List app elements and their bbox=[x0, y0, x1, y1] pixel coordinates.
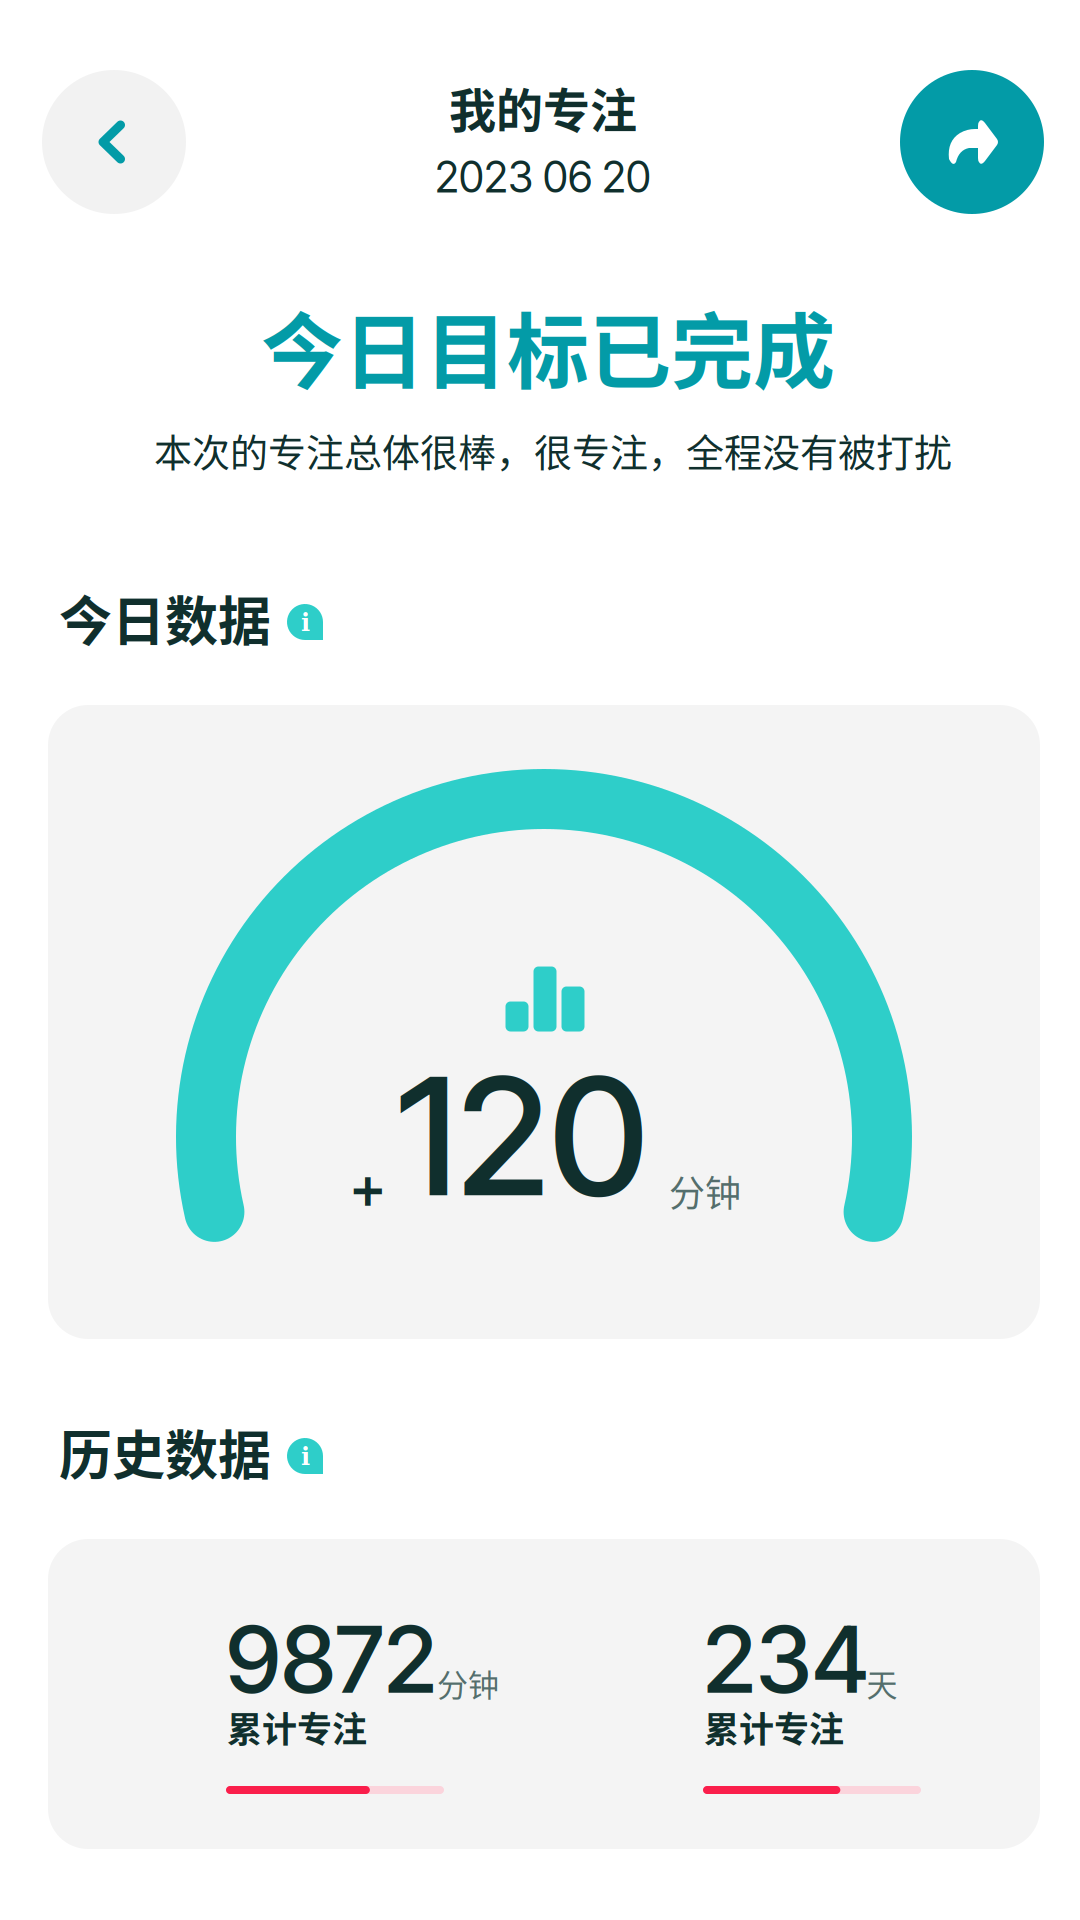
staticText: 分钟 bbox=[437, 1661, 499, 1705]
staticText: 我的专注 bbox=[449, 73, 637, 141]
staticText: 历史数据 bbox=[59, 1414, 271, 1490]
staticText: 本次的专注总体很棒，很专注，全程没有被打扰 bbox=[154, 422, 952, 477]
staticText: 234 bbox=[703, 1603, 869, 1715]
staticText: 分钟 bbox=[669, 1165, 741, 1217]
staticText: i bbox=[301, 608, 310, 637]
staticText: i bbox=[301, 1442, 310, 1471]
staticText: 2023 06 20 bbox=[435, 151, 651, 203]
staticText: 天 bbox=[866, 1661, 897, 1705]
staticText: 累计专注 bbox=[227, 1702, 367, 1752]
button[interactable]: Back bbox=[42, 70, 186, 214]
staticText: 今日目标已完成 bbox=[261, 287, 835, 405]
staticText: + bbox=[349, 1151, 386, 1222]
staticText: 9872 bbox=[226, 1603, 437, 1715]
staticText: 累计专注 bbox=[704, 1702, 844, 1752]
button[interactable]: Share bbox=[900, 70, 1044, 214]
staticText: 今日数据 bbox=[59, 580, 271, 656]
staticText: 120 bbox=[396, 1038, 647, 1234]
